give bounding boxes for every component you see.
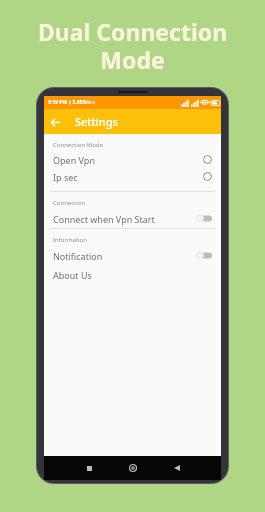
button[interactable]: Connect when Vpn Start [44,209,221,228]
staticText: Open Vpn [53,154,95,166]
button[interactable]: Back [169,460,185,476]
staticText: Dual Connection Mode [0,16,265,76]
staticText: About Us [53,269,92,281]
staticText: Notification [53,250,103,262]
staticText: Settings [75,114,118,129]
button[interactable]: Notification [44,246,221,265]
button[interactable]: Back [44,111,66,133]
button[interactable]: About Us [44,265,221,284]
button[interactable]: Recents [81,460,97,476]
staticText: 5:19 PM | 5.6KB/s [48,99,91,106]
staticText: Ip sec [53,171,78,183]
staticText: Connection [53,199,86,207]
button[interactable]: Home [125,460,141,476]
staticText: Connect when Vpn Start [53,213,155,225]
button[interactable]: Open Vpn [44,151,221,168]
button[interactable]: Ip sec [44,168,221,185]
staticText: Connection Mode [53,141,103,149]
staticText: Information [53,236,87,244]
